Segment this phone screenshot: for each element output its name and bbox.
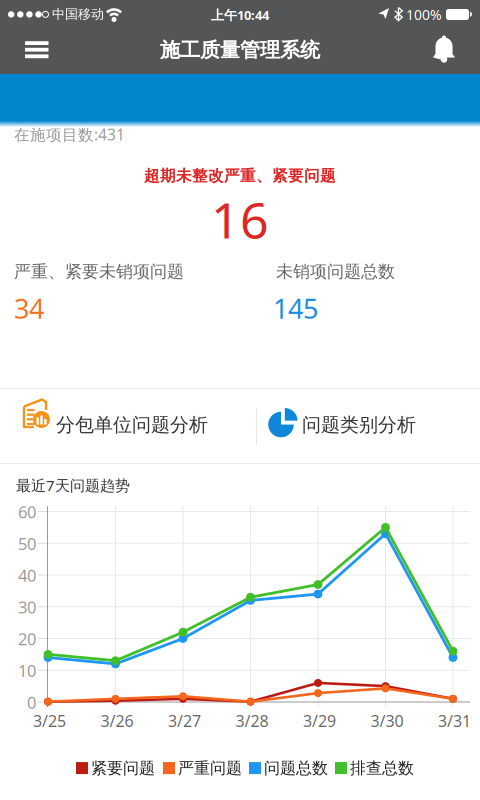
staticText: 问题类别分析 bbox=[302, 413, 416, 437]
button[interactable] bbox=[424, 29, 480, 74]
staticText: 10 bbox=[18, 659, 36, 682]
staticText: 3/28 bbox=[235, 710, 268, 732]
staticText: 超期未整改严重、紧要问题 bbox=[144, 166, 336, 185]
staticText: 最近7天问题趋势 bbox=[16, 475, 130, 495]
staticText: 40 bbox=[18, 564, 36, 586]
staticText: 施工质量管理系统 bbox=[160, 37, 320, 63]
staticText: 未销项问题总数 bbox=[276, 261, 395, 282]
staticText: 3/29 bbox=[303, 710, 336, 732]
button[interactable]: 问题类别分析 bbox=[257, 389, 480, 462]
staticText: 20 bbox=[18, 627, 36, 650]
staticText: 3/26 bbox=[100, 710, 133, 732]
staticText: 在施项目数:431 bbox=[14, 124, 125, 145]
button[interactable]: 分包单位问题分析 bbox=[0, 389, 255, 462]
staticText: 34 bbox=[14, 290, 44, 327]
staticText: 50 bbox=[18, 532, 36, 555]
staticText: 分包单位问题分析 bbox=[56, 413, 208, 437]
staticText: 3/25 bbox=[33, 710, 66, 732]
staticText: 145 bbox=[273, 290, 318, 327]
staticText: 3/30 bbox=[370, 710, 403, 732]
staticText: 16 bbox=[211, 185, 269, 253]
staticText: 100% bbox=[406, 5, 442, 24]
staticText: 严重问题 bbox=[178, 758, 242, 778]
staticText: 排查总数 bbox=[350, 758, 414, 778]
staticText: 3/31 bbox=[438, 710, 471, 732]
staticText: 3/27 bbox=[168, 710, 201, 732]
staticText: 问题总数 bbox=[264, 758, 328, 778]
button[interactable] bbox=[0, 29, 60, 74]
staticText: 0 bbox=[27, 691, 36, 713]
staticText: 上午10:44 bbox=[211, 6, 269, 24]
staticText: 紧要问题 bbox=[91, 758, 155, 778]
staticText: 严重、紧要未销项问题 bbox=[14, 261, 184, 282]
staticText: 30 bbox=[18, 596, 36, 618]
staticText: 中国移动 bbox=[52, 6, 104, 22]
staticText: 60 bbox=[18, 500, 36, 523]
